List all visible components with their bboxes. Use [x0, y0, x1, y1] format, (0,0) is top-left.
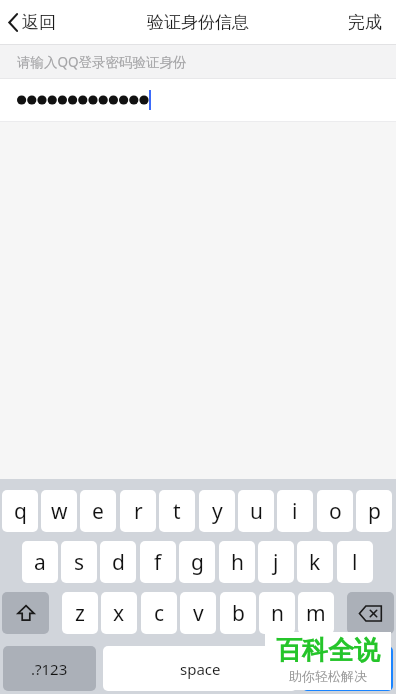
button[interactable]: b — [220, 592, 256, 634]
button[interactable]: Enter — [302, 646, 393, 691]
staticText: c — [154, 599, 165, 628]
staticText: t — [173, 497, 181, 526]
staticText: j — [273, 548, 279, 577]
button[interactable]: 完成 — [334, 0, 396, 44]
button[interactable]: l — [337, 541, 373, 583]
button[interactable]: q — [2, 490, 38, 532]
staticText: e — [92, 497, 104, 526]
button[interactable]: u — [238, 490, 274, 532]
staticText: 百科全说 — [276, 634, 380, 667]
button[interactable]: 返回 — [0, 0, 68, 44]
button[interactable]: z — [62, 592, 98, 634]
button[interactable]: v — [180, 592, 216, 634]
staticText: p — [368, 497, 381, 526]
staticText: x — [113, 599, 125, 628]
button[interactable]: .?123 — [3, 646, 96, 691]
button[interactable]: h — [219, 541, 255, 583]
staticText: n — [271, 599, 284, 628]
staticText: h — [231, 548, 244, 577]
staticText: 请输入QQ登录密码验证身份 — [17, 53, 187, 71]
button[interactable]: o — [317, 490, 353, 532]
staticText: 验证身份信息 — [147, 12, 249, 33]
staticText: f — [154, 548, 162, 577]
staticText: z — [75, 599, 85, 628]
staticText: u — [250, 497, 263, 526]
staticText: y — [212, 497, 223, 526]
staticText: s — [74, 548, 85, 577]
button[interactable]: c — [141, 592, 177, 634]
staticText: b — [232, 599, 245, 628]
button[interactable]: k — [297, 541, 333, 583]
button[interactable]: y — [199, 490, 235, 532]
button[interactable] — [0, 79, 396, 121]
staticText: r — [134, 497, 143, 526]
staticText: space — [180, 659, 221, 679]
staticText: i — [292, 497, 298, 526]
staticText: v — [193, 599, 204, 628]
staticText: w — [51, 497, 68, 526]
staticText: l — [352, 548, 358, 577]
staticText: d — [112, 548, 125, 577]
button[interactable]: g — [179, 541, 215, 583]
button[interactable]: e — [80, 490, 116, 532]
button[interactable]: f — [140, 541, 176, 583]
button[interactable]: m — [298, 592, 334, 634]
button[interactable]: d — [100, 541, 136, 583]
staticText: .?123 — [31, 659, 68, 679]
staticText: a — [34, 548, 46, 577]
button[interactable]: Shift — [2, 592, 49, 634]
staticText: 返回 — [22, 12, 56, 33]
staticText: q — [14, 497, 27, 526]
button[interactable]: j — [258, 541, 294, 583]
button[interactable]: a — [22, 541, 58, 583]
button[interactable]: r — [120, 490, 156, 532]
staticText: 助你轻松解决 — [289, 668, 367, 684]
button[interactable]: s — [61, 541, 97, 583]
button[interactable]: i — [277, 490, 313, 532]
button[interactable]: n — [259, 592, 295, 634]
button[interactable]: w — [41, 490, 77, 532]
button[interactable]: Backspace — [347, 592, 394, 634]
staticText: k — [309, 548, 321, 577]
staticText: 完成 — [348, 12, 382, 33]
staticText: m — [306, 599, 326, 628]
button[interactable]: x — [101, 592, 137, 634]
staticText: g — [191, 548, 204, 577]
button[interactable]: t — [159, 490, 195, 532]
button[interactable]: space — [103, 646, 297, 691]
button[interactable]: p — [356, 490, 392, 532]
staticText: o — [329, 497, 342, 526]
